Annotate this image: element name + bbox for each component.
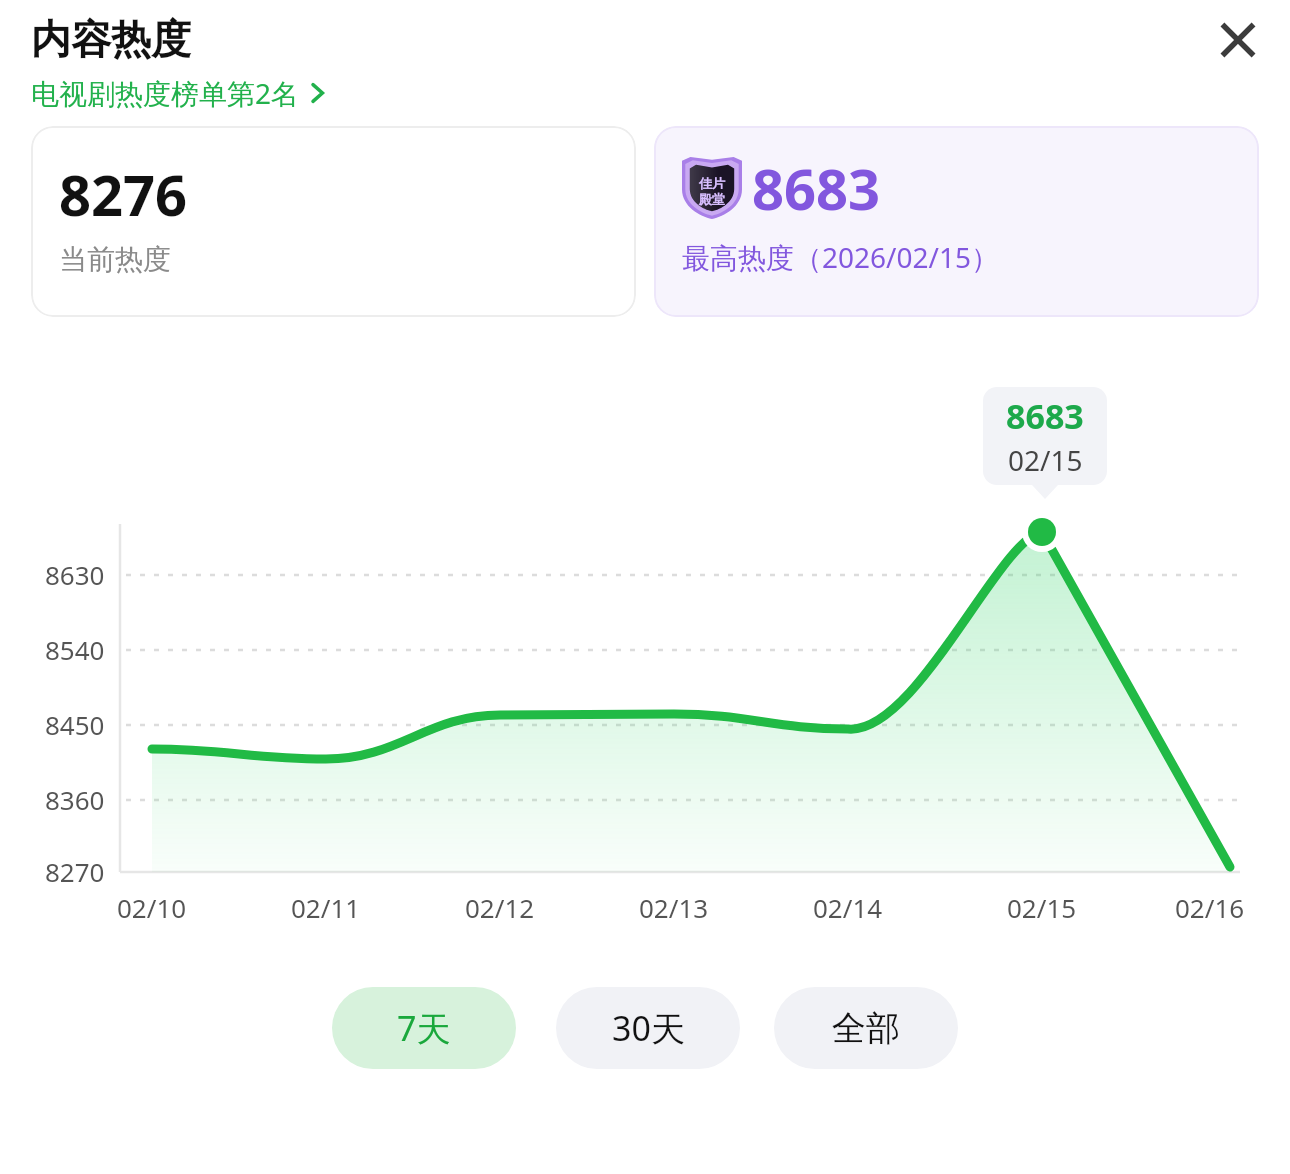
staticText: 殿堂 <box>699 191 725 207</box>
staticText: 8540 <box>45 632 105 667</box>
staticText: 02/15 <box>1007 890 1077 925</box>
staticText: 02/11 <box>291 890 361 925</box>
staticText: 当前热度 <box>59 242 171 277</box>
staticText: 全部 <box>832 1007 900 1050</box>
staticText: 02/16 <box>1175 890 1245 925</box>
staticText: 8270 <box>45 854 105 889</box>
staticText: 02/13 <box>639 890 709 925</box>
staticText: 8276 <box>59 156 188 232</box>
staticText: 02/15 <box>1008 441 1083 479</box>
staticText: 8360 <box>45 782 105 817</box>
staticText: 8630 <box>45 557 105 592</box>
button[interactable]: Close <box>1206 8 1270 72</box>
staticText: 7天 <box>397 1005 451 1051</box>
staticText: 佳片 <box>699 175 725 191</box>
button[interactable]: 电视剧热度榜单第2名 <box>31 74 328 112</box>
staticText: 8683 <box>752 150 881 226</box>
staticText: 30天 <box>612 1005 685 1051</box>
button[interactable]: 30天 <box>556 987 740 1069</box>
button[interactable]: 全部 <box>774 987 958 1069</box>
staticText: 内容热度 <box>31 14 191 64</box>
button[interactable]: 8276 <box>31 126 636 317</box>
staticText: 电视剧热度榜单第2名 <box>31 74 300 112</box>
staticText: 8683 <box>1006 393 1084 439</box>
staticText: 02/12 <box>465 890 535 925</box>
button[interactable]: 7天 <box>332 987 516 1069</box>
staticText: 02/10 <box>117 890 187 925</box>
staticText: 8450 <box>45 707 105 742</box>
staticText: 最高热度（2026/02/15） <box>682 238 999 276</box>
button[interactable]: 佳片 <box>654 126 1259 317</box>
staticText: 02/14 <box>813 890 883 925</box>
